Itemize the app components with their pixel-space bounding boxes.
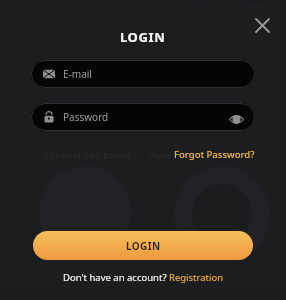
staticText: Carnival Cat: Bonus ... bbox=[44, 149, 141, 161]
staticText: Don't have an account? bbox=[63, 271, 169, 284]
staticText: LOGIN bbox=[120, 28, 166, 46]
button[interactable]: Forgot Password? bbox=[174, 148, 255, 161]
button[interactable]: LOGIN bbox=[33, 231, 253, 260]
staticText: Password bbox=[63, 110, 109, 124]
button[interactable]: Password bbox=[31, 103, 255, 131]
staticText: Registration bbox=[169, 271, 224, 284]
staticText: LOGIN bbox=[126, 239, 161, 253]
staticText: Aero bbox=[150, 149, 172, 161]
button[interactable]: E-mail bbox=[31, 60, 255, 88]
button[interactable] bbox=[251, 14, 273, 36]
staticText: E-mail bbox=[63, 67, 92, 81]
button[interactable]: Don't have an account? bbox=[63, 271, 224, 284]
